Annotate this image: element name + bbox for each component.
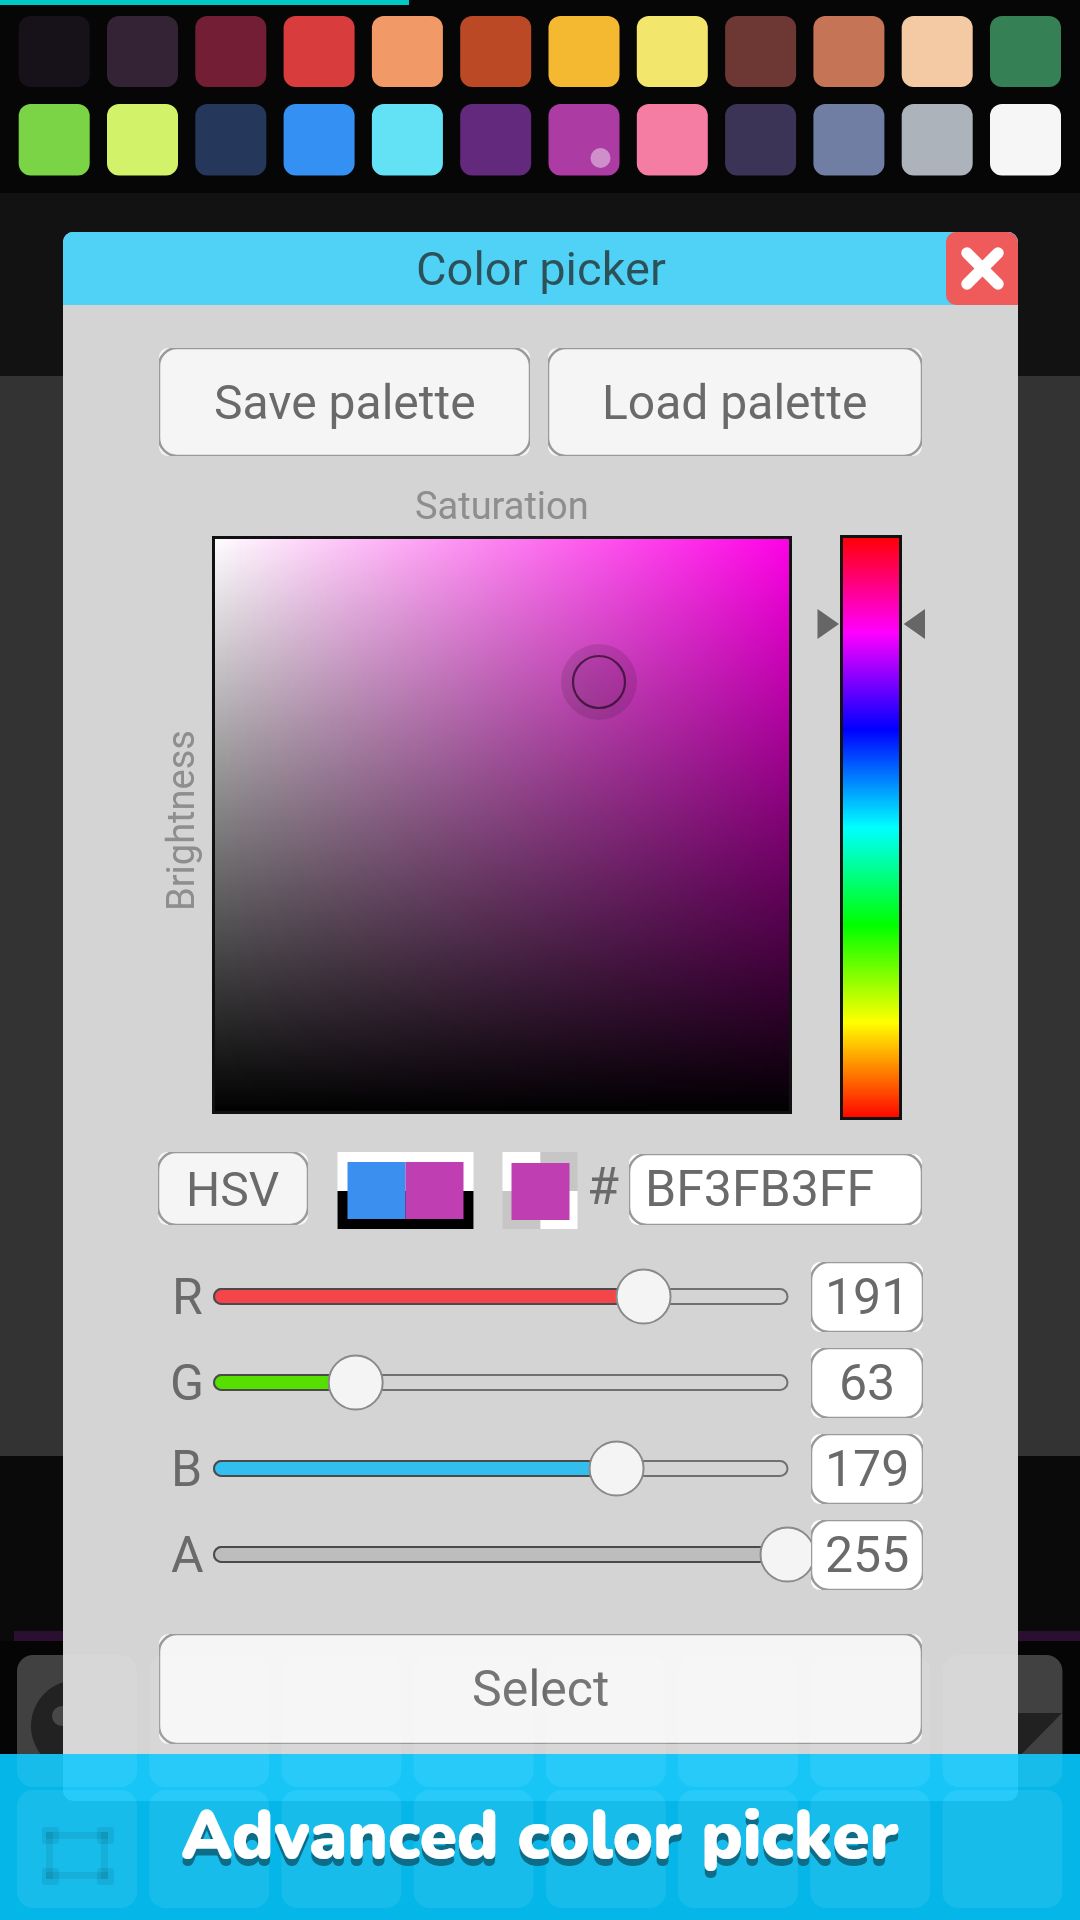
staticText: R	[172, 1268, 203, 1327]
button[interactable]: Color picker	[63, 232, 1018, 305]
staticText: 63	[839, 1354, 896, 1413]
staticText: Color picker	[416, 241, 666, 296]
button[interactable]: 63	[811, 1348, 923, 1418]
button[interactable]	[212, 536, 792, 1114]
staticText: Advanced color picker	[0, 1797, 1080, 1888]
staticText: 191	[825, 1268, 910, 1327]
button[interactable]: Load palette	[548, 348, 922, 456]
button[interactable]: BF3FB3FF	[629, 1154, 922, 1225]
button[interactable]: 255	[811, 1520, 923, 1590]
staticText: A	[171, 1526, 204, 1585]
staticText: Advanced color picker	[0, 1790, 1080, 1881]
button[interactable]: Close	[946, 232, 1018, 305]
staticText: Select	[472, 1660, 610, 1719]
staticText: Save palette	[214, 374, 476, 430]
staticText: G	[170, 1354, 205, 1413]
staticText: HSV	[186, 1161, 280, 1217]
button[interactable]	[840, 535, 902, 1120]
button[interactable]: 179	[811, 1434, 923, 1504]
staticText: #	[587, 1156, 620, 1217]
staticText: 179	[825, 1440, 910, 1499]
staticText: BF3FB3FF	[645, 1160, 875, 1219]
button[interactable]: 191	[811, 1262, 923, 1332]
button[interactable]: Select	[159, 1634, 922, 1744]
staticText: Brightness	[159, 730, 204, 911]
button[interactable]: HSV	[158, 1152, 308, 1225]
staticText: Load palette	[602, 374, 868, 430]
staticText: 255	[825, 1526, 910, 1585]
button[interactable]: Save palette	[159, 348, 530, 456]
staticText: Saturation	[415, 484, 589, 529]
staticText: B	[171, 1440, 203, 1499]
